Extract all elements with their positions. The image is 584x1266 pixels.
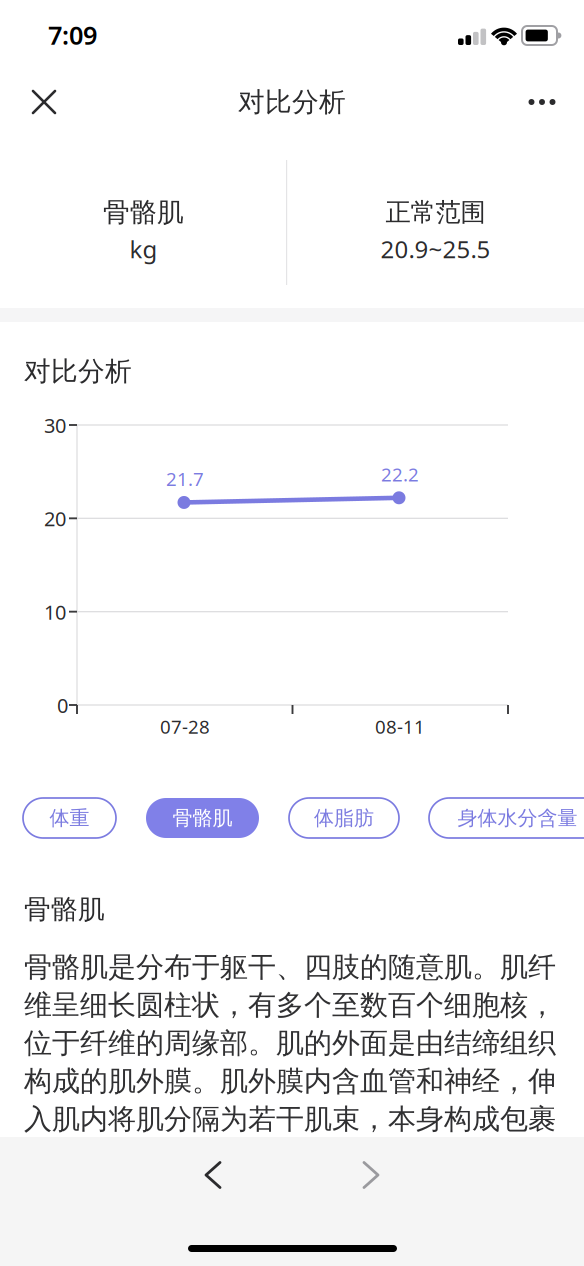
staticText: 体脂肪	[314, 806, 374, 830]
button[interactable]: 身体水分含量	[429, 798, 584, 838]
staticText: 骨骼肌	[172, 806, 232, 830]
staticText: 对比分析	[238, 86, 346, 118]
staticText: 20.9~25.5	[380, 233, 490, 265]
staticText: 骨骼肌	[24, 893, 105, 926]
staticText: 22.2	[381, 462, 419, 487]
staticText: 身体水分含量	[457, 806, 577, 830]
staticText: 对比分析	[24, 355, 132, 388]
button[interactable]: 体重	[23, 798, 116, 838]
button[interactable]: Back	[167, 1140, 259, 1210]
staticText: 7:09	[48, 18, 97, 52]
staticText: 骨骼肌是分布于躯干、四肢的随意肌。肌纤维呈细长圆柱状，有多个至数百个细胞核，位于…	[24, 950, 556, 1174]
button[interactable]: 骨骼肌	[146, 798, 259, 838]
staticText: 08-11	[375, 714, 425, 739]
staticText: 10	[44, 599, 66, 625]
staticText: 20	[44, 505, 66, 532]
button[interactable]: Forward	[325, 1140, 417, 1210]
button[interactable]: More	[511, 72, 573, 132]
staticText: 体重	[49, 806, 89, 830]
staticText: 骨骼肌	[103, 196, 184, 229]
button[interactable]: 体脂肪	[289, 798, 399, 838]
staticText: 07-28	[160, 714, 210, 739]
staticText: kg	[129, 233, 157, 265]
staticText: 21.7	[166, 466, 204, 491]
staticText: 0	[57, 692, 68, 719]
staticText: 30	[44, 412, 66, 439]
button[interactable]: Close	[13, 72, 75, 132]
staticText: 正常范围	[385, 197, 485, 228]
